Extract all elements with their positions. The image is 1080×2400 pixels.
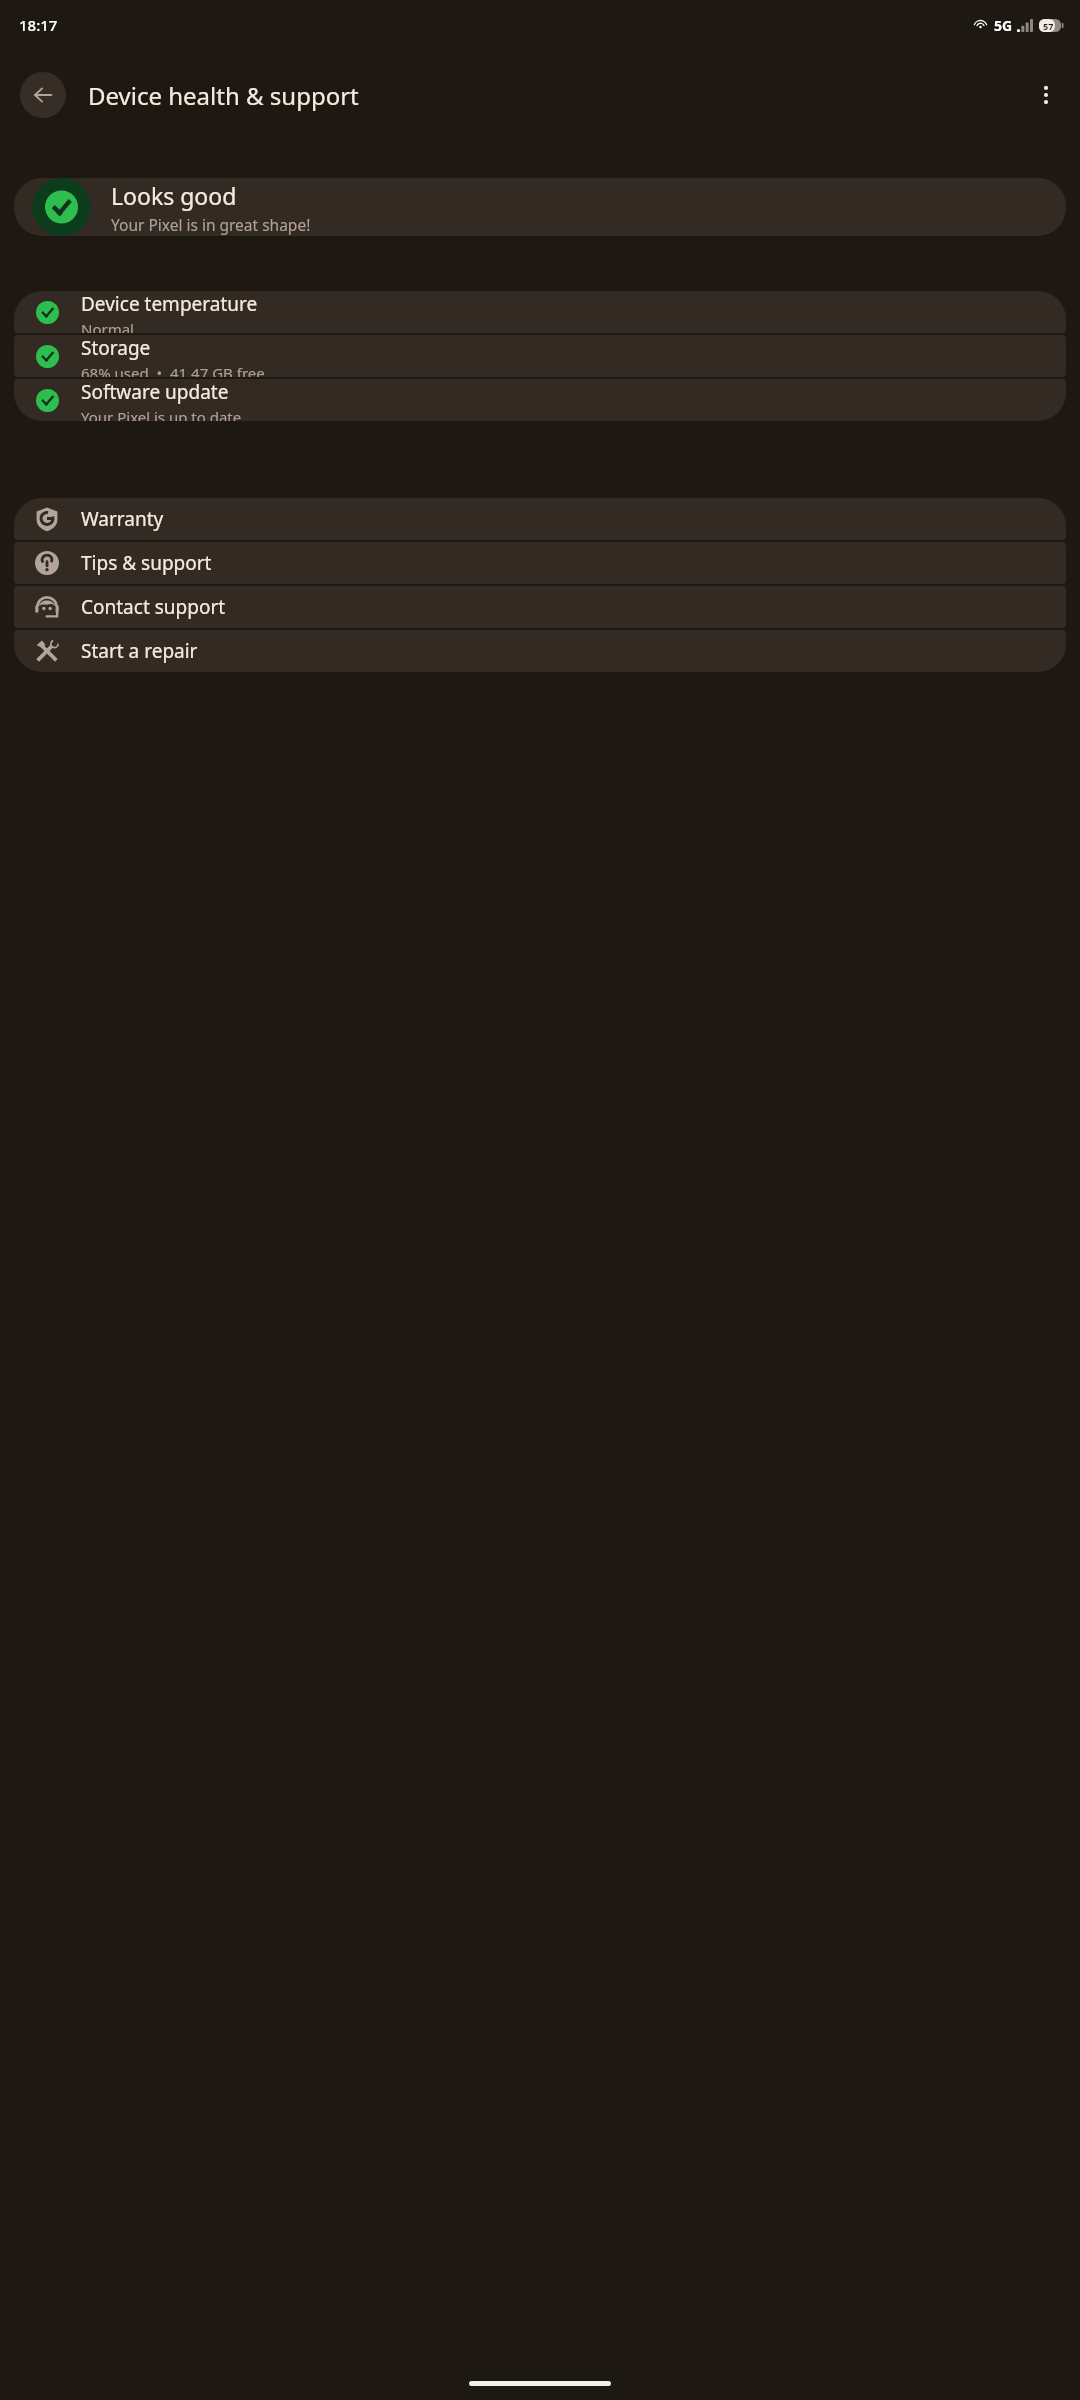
- staticText: 5G: [994, 16, 1013, 35]
- button[interactable]: Device temperature: [14, 291, 1066, 333]
- staticText: Your Pixel is in great shape!: [111, 214, 311, 235]
- button[interactable]: Looks good: [14, 178, 1066, 236]
- staticText: 68% used • 41.47 GB free: [81, 363, 265, 377]
- staticText: Warranty: [81, 506, 164, 532]
- staticText: Start a repair: [81, 638, 198, 664]
- staticText: 57: [1043, 20, 1054, 32]
- button[interactable]: Tips & support: [14, 542, 1066, 584]
- staticText: Software update: [81, 379, 229, 405]
- staticText: Device temperature: [81, 291, 258, 317]
- staticText: Contact support: [81, 594, 226, 620]
- staticText: Storage: [81, 335, 151, 361]
- button[interactable]: Storage: [14, 335, 1066, 377]
- staticText: 18:17: [19, 15, 58, 35]
- staticText: Device health & support: [88, 79, 359, 112]
- button[interactable]: Start a repair: [14, 630, 1066, 672]
- button[interactable]: More options: [1022, 71, 1070, 119]
- button[interactable]: Contact support: [14, 586, 1066, 628]
- staticText: Normal: [81, 319, 134, 333]
- button[interactable]: Software update: [14, 379, 1066, 421]
- button[interactable]: Back: [20, 72, 66, 118]
- button[interactable]: Warranty: [14, 498, 1066, 540]
- staticText: Tips & support: [81, 550, 212, 576]
- staticText: Your Pixel is up to date: [81, 407, 242, 421]
- staticText: Looks good: [111, 180, 237, 211]
